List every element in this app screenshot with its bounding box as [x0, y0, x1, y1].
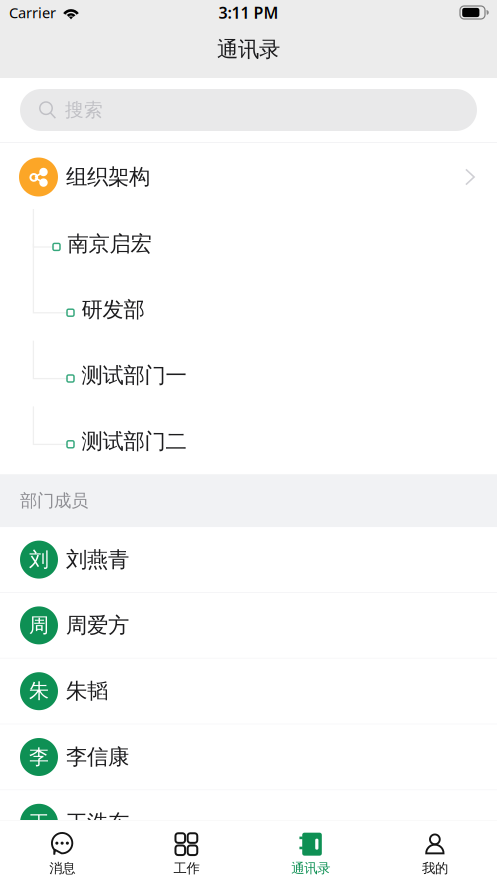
button[interactable]: 通讯录 — [248, 820, 373, 883]
staticText: 工作 — [173, 860, 199, 877]
staticText: 周 — [29, 613, 49, 638]
staticText: 3:11 PM — [218, 2, 278, 23]
staticText: 周爱方 — [66, 612, 129, 638]
staticText: 测试部门一 — [81, 362, 186, 389]
staticText: Carrier — [9, 3, 56, 22]
staticText: 王浩东 — [66, 810, 129, 836]
button[interactable]: 周 — [0, 593, 497, 659]
staticText: 通讯录 — [217, 36, 280, 63]
button[interactable]: 研发部 — [0, 277, 497, 343]
staticText: 刘 — [29, 547, 49, 572]
staticText: 搜索 — [65, 98, 103, 121]
staticText: 研发部 — [81, 297, 144, 323]
staticText: 测试部门二 — [81, 428, 186, 454]
staticText: 通讯录 — [291, 860, 330, 877]
button[interactable]: 搜索 — [20, 89, 477, 131]
staticText: 朱 — [29, 679, 49, 703]
button[interactable]: 南京启宏 — [0, 211, 497, 277]
button[interactable]: 我的 — [373, 820, 497, 883]
button[interactable]: 工作 — [124, 820, 248, 883]
button[interactable]: 刘 — [0, 527, 497, 593]
staticText: 消息 — [49, 860, 75, 877]
staticText: 南京启宏 — [67, 231, 151, 257]
button[interactable]: 陈 — [0, 856, 497, 883]
button[interactable]: 李 — [0, 725, 497, 790]
staticText: 朱韬 — [66, 678, 108, 704]
staticText: 部门成员 — [20, 490, 88, 511]
staticText: 王 — [29, 810, 49, 835]
button[interactable]: 朱 — [0, 659, 497, 725]
button[interactable]: 测试部门二 — [0, 408, 497, 474]
staticText: 李 — [29, 745, 49, 769]
button[interactable]: 组织架构 — [0, 143, 497, 211]
staticText: 李信康 — [66, 744, 129, 770]
staticText: 我的 — [422, 860, 448, 877]
staticText: 刘燕青 — [66, 546, 129, 573]
staticText: 组织架构 — [66, 164, 150, 190]
button[interactable]: 王 — [0, 790, 497, 856]
button[interactable]: 消息 — [0, 820, 124, 883]
button[interactable]: 测试部门一 — [0, 343, 497, 408]
